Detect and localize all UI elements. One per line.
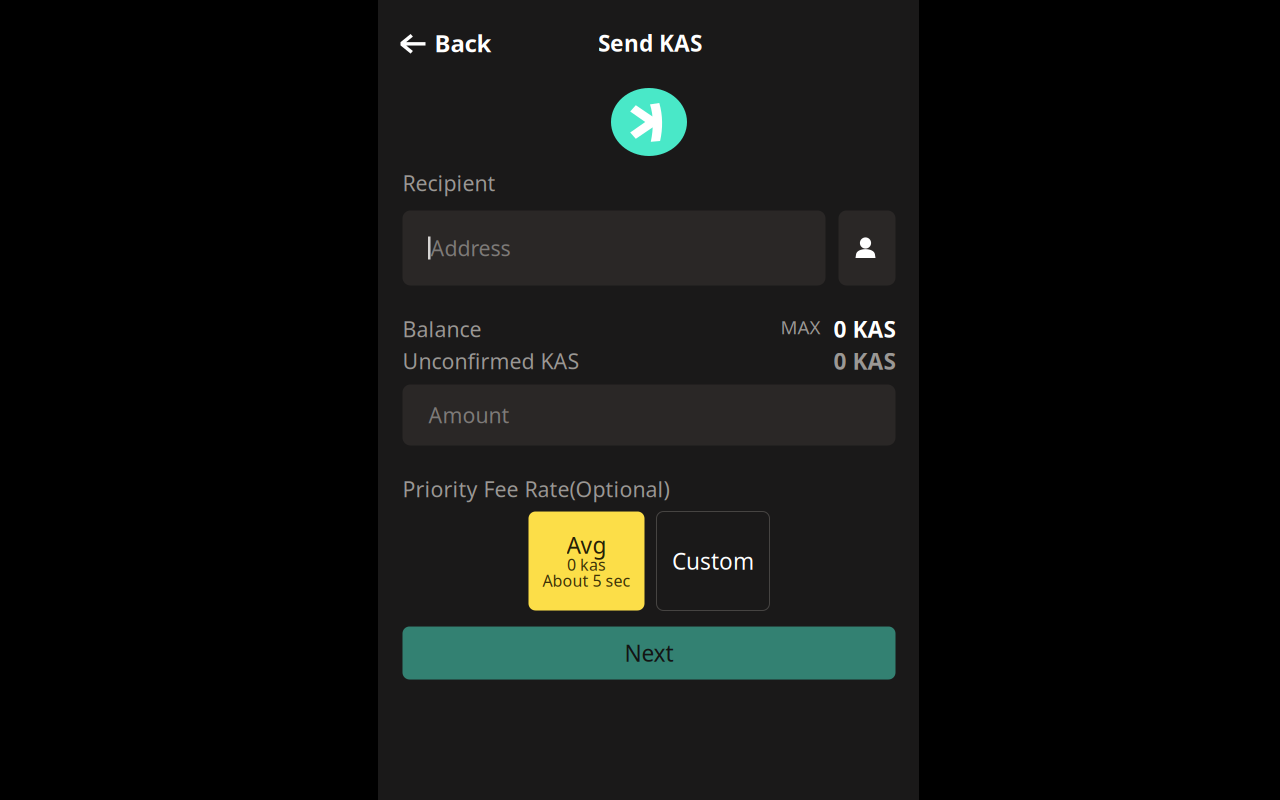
staticText: About 5 sec [542, 570, 630, 591]
staticText: MAX [780, 315, 820, 339]
staticText: Address [430, 234, 510, 262]
staticText: Custom [672, 546, 754, 576]
staticText: 0 kas [567, 554, 606, 575]
button[interactable]: MAX [778, 314, 822, 344]
button[interactable]: Avg [528, 511, 644, 610]
staticText: Amount [428, 401, 509, 429]
button[interactable]: Custom [656, 511, 769, 610]
staticText: Unconfirmed KAS [402, 347, 579, 375]
staticText: Avg [566, 530, 606, 560]
staticText: Back [434, 27, 491, 59]
staticText: Send KAS [598, 28, 702, 58]
staticText: Balance [402, 315, 481, 343]
staticText: 0 KAS [833, 314, 895, 344]
button[interactable]: Back [378, 21, 505, 65]
staticText: Next [624, 638, 673, 668]
button[interactable]: Next [402, 626, 895, 679]
staticText: Priority Fee Rate(Optional) [402, 475, 669, 503]
staticText: 0 KAS [833, 346, 895, 376]
button[interactable]: Choose from contacts [838, 210, 895, 285]
staticText: Recipient [402, 169, 495, 197]
